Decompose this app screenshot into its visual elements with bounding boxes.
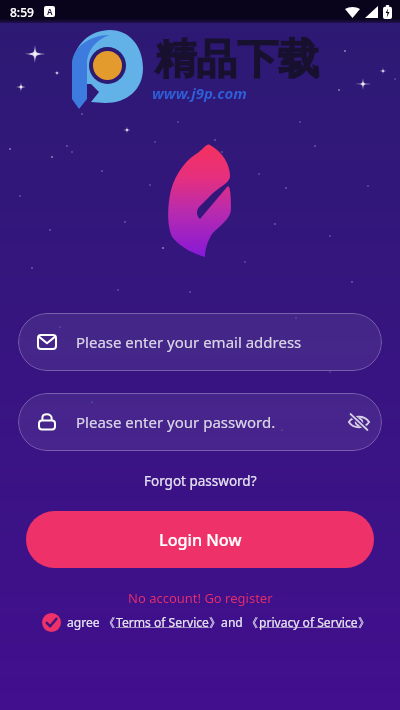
button[interactable]: No account! Go register xyxy=(120,585,281,611)
staticText: Please enter your password. xyxy=(76,412,276,432)
staticText: agree xyxy=(67,614,103,630)
staticText: Login Now xyxy=(159,529,242,551)
button[interactable]: Please enter your email address xyxy=(18,313,382,371)
staticText: 精品下载 xyxy=(155,34,319,86)
staticText: 8:59 xyxy=(10,4,34,20)
staticText: www.j9p.com xyxy=(152,83,247,103)
staticText: Terms of Service xyxy=(116,614,209,630)
staticText: 》 xyxy=(358,615,371,630)
button[interactable]: Please enter your password. xyxy=(18,393,382,451)
button[interactable]: Forgot password? xyxy=(134,467,267,495)
button[interactable]: Login Now xyxy=(26,511,374,568)
button[interactable]: Agree checkbox xyxy=(40,611,62,633)
staticText: No account! Go register xyxy=(128,589,273,607)
staticText: A xyxy=(47,6,53,17)
staticText: 》and 《 xyxy=(209,614,259,631)
staticText: 《 xyxy=(103,615,116,630)
staticText: Please enter your email address xyxy=(76,332,302,352)
button[interactable]: privacy of Service xyxy=(259,614,358,630)
button[interactable]: Terms of Service xyxy=(116,614,209,630)
staticText: Forgot password? xyxy=(144,472,257,490)
button[interactable]: Show password xyxy=(346,409,372,435)
staticText: privacy of Service xyxy=(259,614,358,630)
